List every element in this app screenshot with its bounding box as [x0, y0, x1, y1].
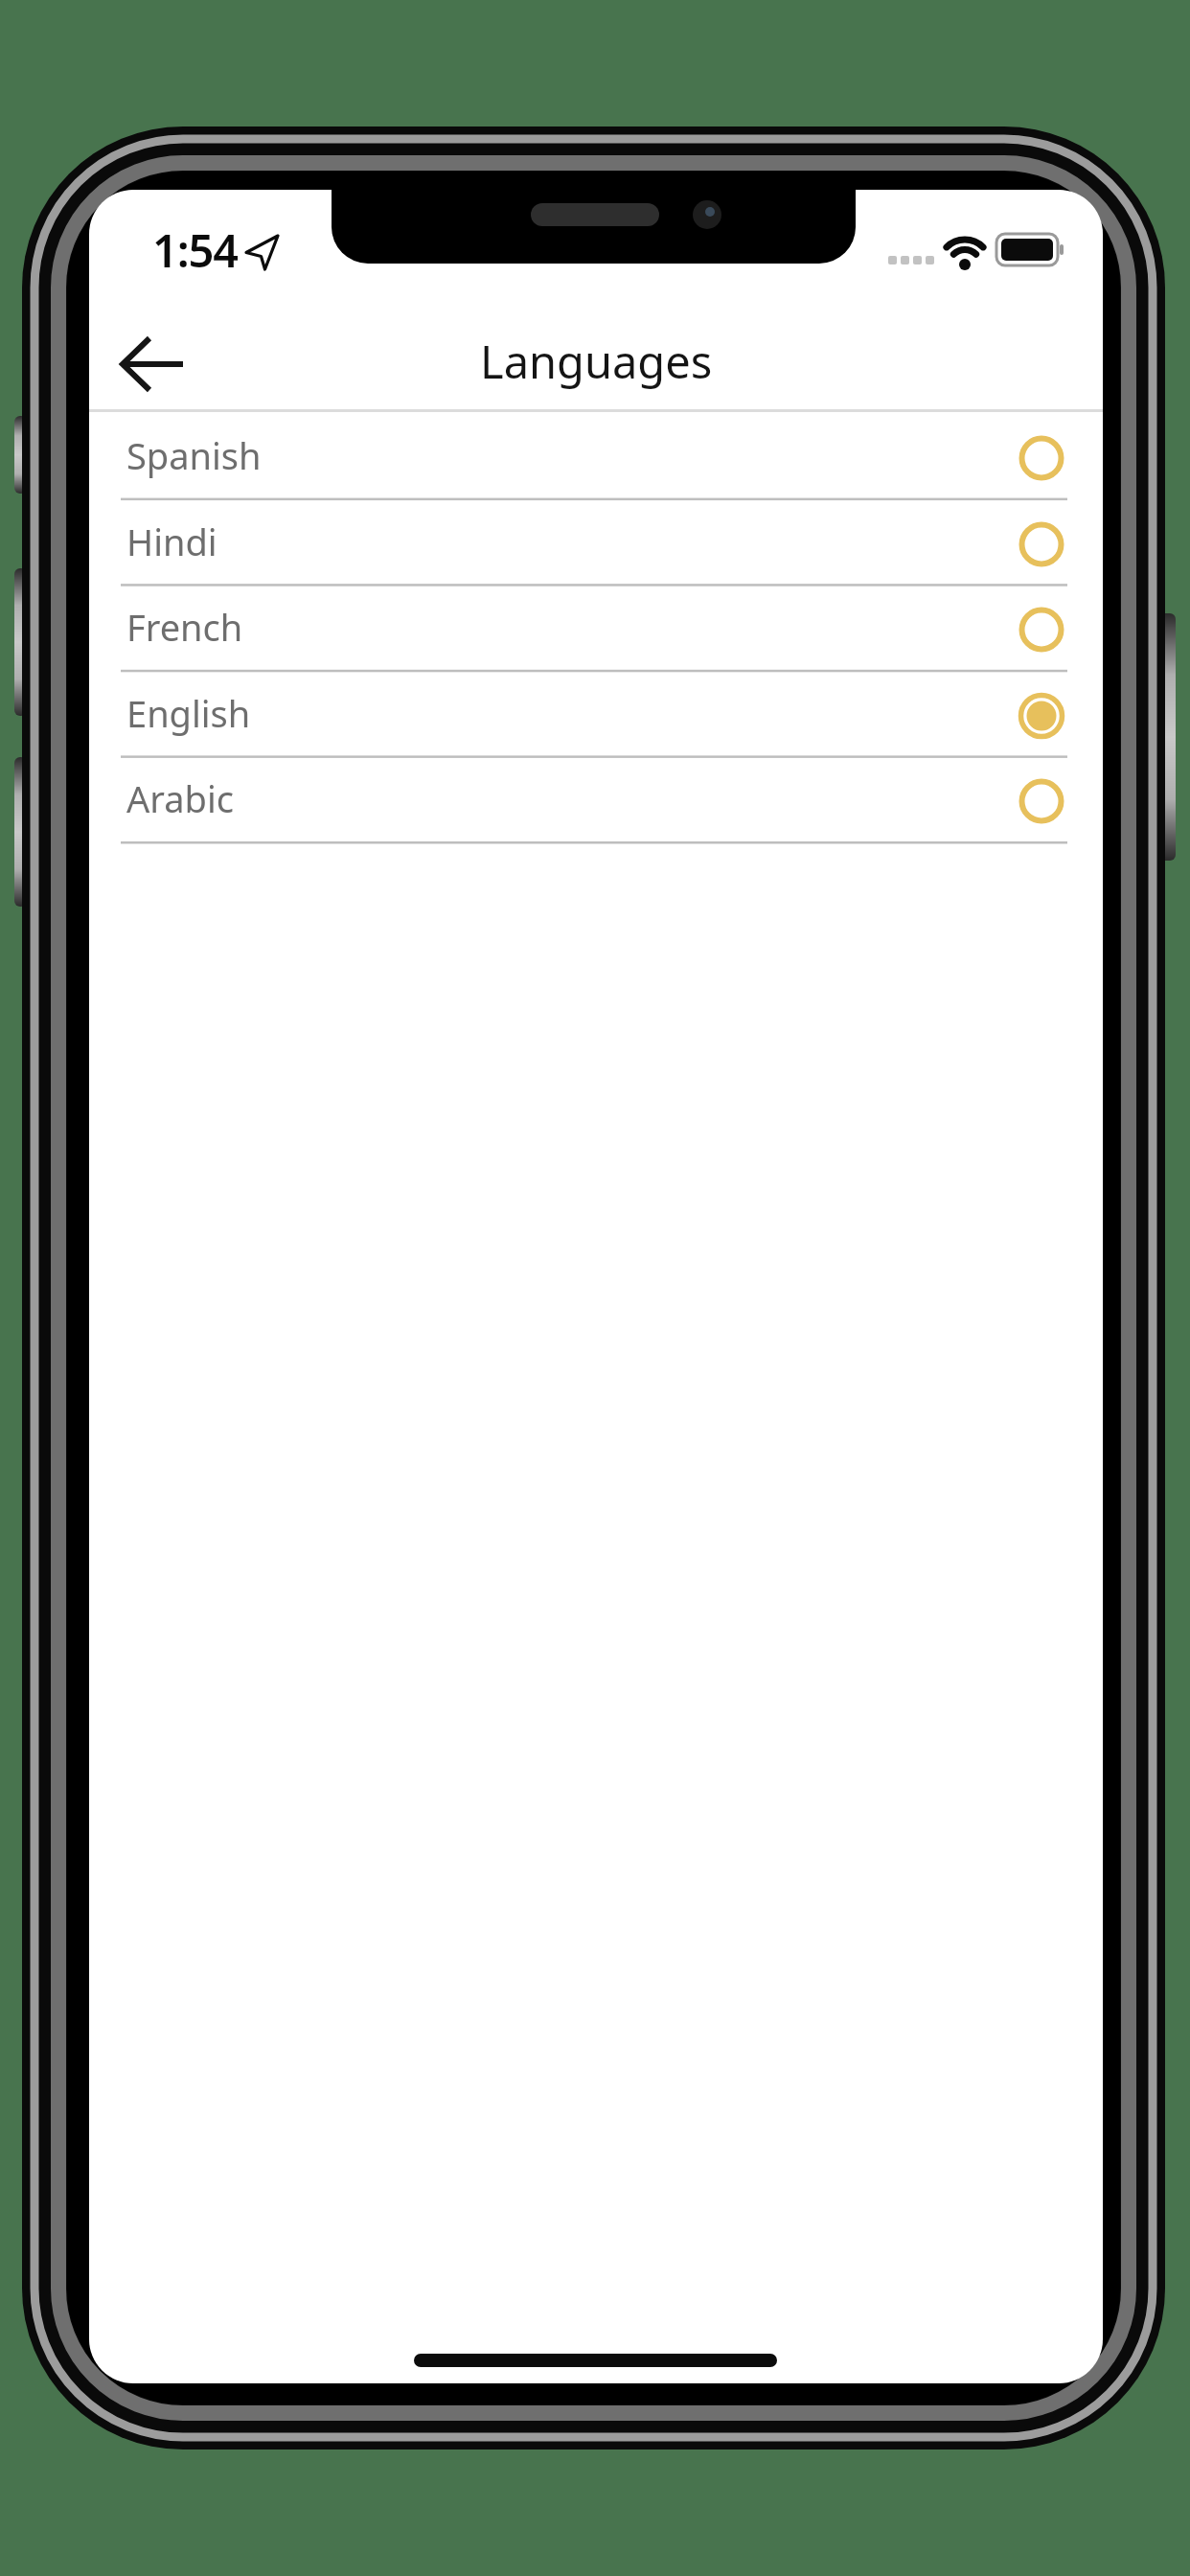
button[interactable]: [105, 326, 201, 402]
button[interactable]: Spanish: [89, 412, 1103, 498]
button[interactable]: Hindi: [89, 498, 1103, 585]
button[interactable]: French: [89, 584, 1103, 670]
staticText: French: [126, 602, 243, 652]
button[interactable]: English: [89, 670, 1103, 756]
button[interactable]: Arabic: [89, 755, 1103, 841]
staticText: Arabic: [126, 773, 234, 823]
staticText: Languages: [480, 331, 713, 392]
staticText: Hindi: [126, 517, 217, 566]
staticText: Spanish: [126, 430, 262, 480]
staticText: English: [126, 688, 251, 738]
staticText: 1:54: [152, 219, 238, 279]
